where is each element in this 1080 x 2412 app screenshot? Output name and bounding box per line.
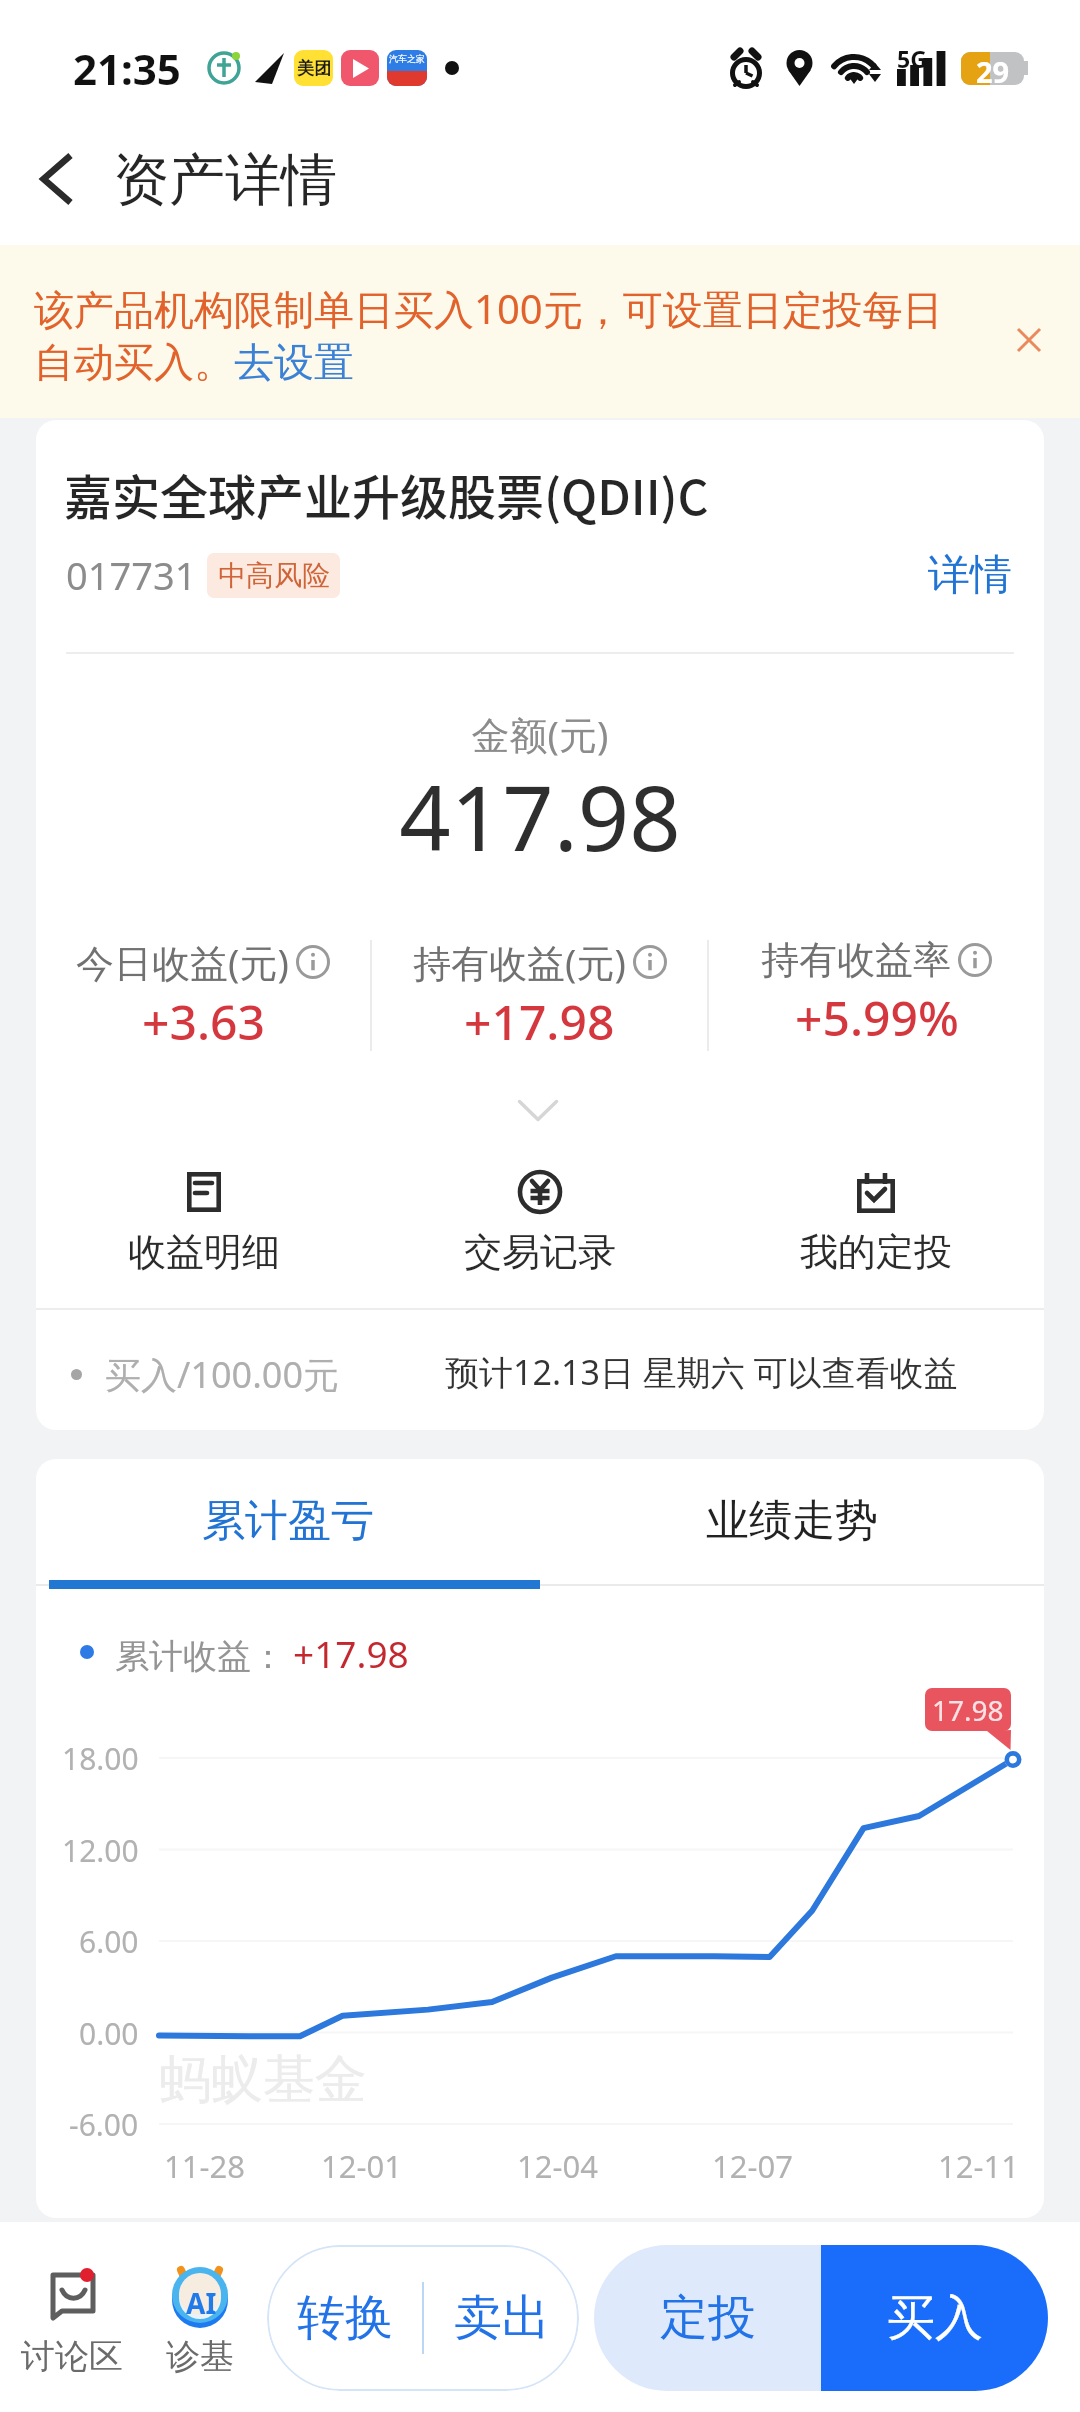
staticText: 交易记录	[464, 1228, 616, 1276]
staticText: 自动买入。	[34, 337, 234, 387]
staticText: 今日收益(元)	[76, 936, 289, 988]
staticText: 017731	[66, 549, 197, 601]
staticText: -6.00	[69, 2104, 139, 2145]
staticText: 12.00	[62, 1830, 139, 1871]
staticText: 12-01	[321, 2145, 402, 2187]
button[interactable]: 交易记录	[372, 1171, 708, 1276]
staticText: 预计12.13日 星期六 可以查看收益	[445, 1349, 958, 1395]
button[interactable]: 业绩走势	[540, 1459, 1044, 1583]
staticText: 12-07	[712, 2145, 793, 2187]
button[interactable]: Back	[10, 100, 104, 245]
staticText: 中高风险	[218, 558, 330, 593]
staticText: 12-11	[938, 2145, 1019, 2187]
staticText: AI	[186, 2284, 217, 2322]
staticText: 买入	[887, 2288, 983, 2348]
staticText: 21:35	[73, 40, 181, 97]
button[interactable]: 我的定投	[708, 1171, 1044, 1276]
button[interactable]: 收益明细	[36, 1171, 372, 1276]
staticText: 金额(元)	[36, 708, 1044, 760]
staticText: 417.98	[36, 755, 1044, 878]
staticText: 收益明细	[128, 1228, 280, 1276]
staticText: 买入/100.00元	[105, 1350, 340, 1399]
staticText: 资产详情	[113, 145, 337, 216]
button[interactable]: 累计盈亏	[36, 1459, 540, 1583]
staticText: 业绩走势	[706, 1494, 878, 1548]
staticText: +17.98	[293, 1628, 409, 1678]
staticText: 嘉实全球产业升级股票(QDII)C	[64, 459, 709, 529]
staticText: +17.98	[464, 989, 615, 1054]
button[interactable]: 讨论区	[14, 2222, 130, 2412]
staticText: +3.63	[142, 989, 265, 1054]
button[interactable]: 转换	[267, 2245, 422, 2391]
staticText: 诊基	[166, 2335, 234, 2378]
staticText: 该产品机构限制单日买入100元，可设置日定投每日	[34, 281, 943, 336]
button[interactable]: AI	[142, 2222, 258, 2412]
staticText: 我的定投	[800, 1228, 952, 1276]
button[interactable]: Close	[988, 299, 1070, 381]
staticText: 蚂蚁基金	[159, 2047, 367, 2113]
button[interactable]: 卖出	[424, 2245, 579, 2391]
button[interactable]: 去设置	[234, 337, 354, 387]
staticText: 持有收益率	[761, 936, 951, 984]
button[interactable]: 详情	[928, 549, 1012, 602]
staticText: 定投	[660, 2288, 756, 2348]
button[interactable]: 持有收益(元)	[372, 934, 707, 1054]
staticText: 0.00	[79, 2013, 139, 2054]
staticText: 汽车之家	[389, 53, 425, 64]
staticText: 12-04	[517, 2145, 598, 2187]
staticText: 17.98	[932, 1691, 1004, 1729]
button[interactable]: 今日收益(元)	[36, 934, 370, 1054]
staticText: 卖出	[454, 2288, 550, 2348]
staticText: 转换	[297, 2288, 393, 2348]
staticText: 5G	[897, 43, 927, 74]
staticText: 累计收益：	[115, 1635, 285, 1678]
button[interactable]: 持有收益率	[709, 934, 1044, 1054]
staticText: 18.00	[62, 1738, 139, 1779]
button[interactable]: 定投	[594, 2245, 821, 2391]
staticText: 29	[976, 52, 1010, 85]
staticText: 11-28	[164, 2145, 245, 2187]
staticText: 讨论区	[21, 2335, 123, 2378]
staticText: 累计盈亏	[202, 1494, 374, 1548]
staticText: +5.99%	[795, 985, 959, 1050]
button[interactable]: 买入	[821, 2245, 1048, 2391]
staticText: 美团	[297, 58, 331, 79]
staticText: 持有收益(元)	[413, 936, 626, 988]
staticText: 6.00	[79, 1921, 139, 1962]
